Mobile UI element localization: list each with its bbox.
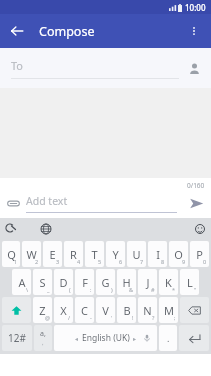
staticText: Q: [7, 247, 16, 262]
staticText: D: [59, 275, 68, 290]
staticText: ◂: [75, 335, 79, 342]
staticText: Y: [112, 247, 119, 262]
button[interactable]: Backspace: [180, 297, 209, 323]
staticText: -: [90, 314, 92, 321]
button[interactable]: Y: [106, 241, 125, 267]
staticText: a,: [40, 329, 46, 339]
button[interactable]: B: [117, 297, 136, 323]
staticText: I: [156, 247, 160, 262]
staticText: ): [111, 286, 113, 293]
button[interactable]: R: [64, 241, 83, 267]
button[interactable]: I: [148, 241, 167, 267]
button[interactable]: O: [169, 241, 188, 267]
button[interactable]: A: [12, 269, 31, 295]
staticText: 0: [203, 258, 207, 265]
staticText: X: [60, 303, 67, 318]
staticText: 0/160: [187, 181, 205, 190]
button[interactable]: Z: [33, 297, 52, 323]
staticText: B: [123, 303, 131, 318]
staticText: E: [49, 247, 56, 262]
button[interactable]: N: [138, 297, 157, 323]
staticText: ,: [42, 339, 44, 347]
staticText: G: [101, 275, 110, 290]
staticText: ?: [152, 314, 155, 321]
button[interactable]: F: [75, 269, 94, 295]
button[interactable]: C: [75, 297, 94, 323]
staticText: K: [165, 275, 172, 290]
button[interactable]: Shift: [2, 297, 31, 323]
staticText: C: [81, 303, 88, 318]
staticText: L: [187, 275, 193, 290]
staticText: 8: [161, 258, 165, 265]
staticText: (: [69, 286, 71, 293]
staticText: F: [82, 275, 88, 290]
staticText: M: [164, 303, 174, 318]
button[interactable]: X: [54, 297, 73, 323]
button[interactable]: Attach: [0, 190, 26, 216]
staticText: 6: [119, 258, 123, 265]
button[interactable]: Handwriting: [0, 218, 22, 240]
button[interactable]: W: [22, 241, 41, 267]
staticText: @: [45, 314, 50, 321]
staticText: 1: [14, 258, 18, 265]
staticText: O: [174, 247, 183, 262]
button[interactable]: Back: [0, 14, 34, 48]
button[interactable]: H: [117, 269, 136, 295]
staticText: S: [39, 275, 46, 290]
button[interactable]: More options: [179, 16, 209, 46]
staticText: 3: [56, 258, 60, 265]
staticText: /: [68, 314, 71, 321]
button[interactable]: Language: [35, 218, 57, 240]
staticText: To: [11, 58, 24, 73]
button[interactable]: J: [138, 269, 157, 295]
button[interactable]: 12#: [2, 325, 32, 351]
staticText: J: [146, 275, 150, 290]
staticText: 5: [98, 258, 102, 265]
button[interactable]: Send: [181, 190, 211, 216]
staticText: !: [132, 314, 134, 321]
button[interactable]: ◂: [54, 325, 157, 351]
button[interactable]: P: [190, 241, 209, 267]
button[interactable]: Q: [2, 241, 20, 267]
staticText: 12#: [8, 331, 26, 345]
staticText: P: [196, 247, 203, 262]
staticText: Z: [39, 303, 46, 318]
staticText: English (UK): [82, 332, 130, 344]
staticText: 10:00: [185, 2, 206, 13]
staticText: .: [167, 332, 170, 344]
button[interactable]: Emoji: [189, 218, 211, 240]
staticText: A: [18, 275, 26, 290]
staticText: 7: [140, 258, 144, 265]
staticText: N: [143, 303, 152, 318]
staticText: &: [129, 286, 134, 293]
staticText: _: [47, 286, 50, 293]
staticText: ▸: [133, 335, 137, 342]
staticText: ;: [174, 314, 176, 321]
button[interactable]: E: [43, 241, 62, 267]
button[interactable]: U: [127, 241, 146, 267]
button[interactable]: V: [96, 297, 115, 323]
staticText: 2: [35, 258, 39, 265]
staticText: T: [91, 247, 98, 262]
staticText: W: [26, 247, 37, 262]
button[interactable]: Add contact: [183, 57, 205, 79]
button[interactable]: G: [96, 269, 115, 295]
staticText: Compose: [39, 23, 95, 40]
button[interactable]: Symbols: [34, 325, 52, 351]
staticText: V: [102, 303, 109, 318]
button[interactable]: K: [159, 269, 178, 295]
button[interactable]: T: [85, 241, 104, 267]
staticText: R: [70, 247, 77, 262]
staticText: *: [172, 286, 176, 293]
staticText: \: [26, 286, 29, 293]
staticText: H: [122, 275, 131, 290]
staticText: 9: [182, 258, 186, 265]
button[interactable]: D: [54, 269, 73, 295]
button[interactable]: M: [159, 297, 178, 323]
button[interactable]: S: [33, 269, 52, 295]
button[interactable]: L: [180, 269, 199, 295]
button[interactable]: .: [159, 325, 177, 351]
staticText: ': [111, 314, 113, 321]
button[interactable]: Enter: [179, 325, 209, 351]
staticText: Add text: [26, 194, 68, 208]
